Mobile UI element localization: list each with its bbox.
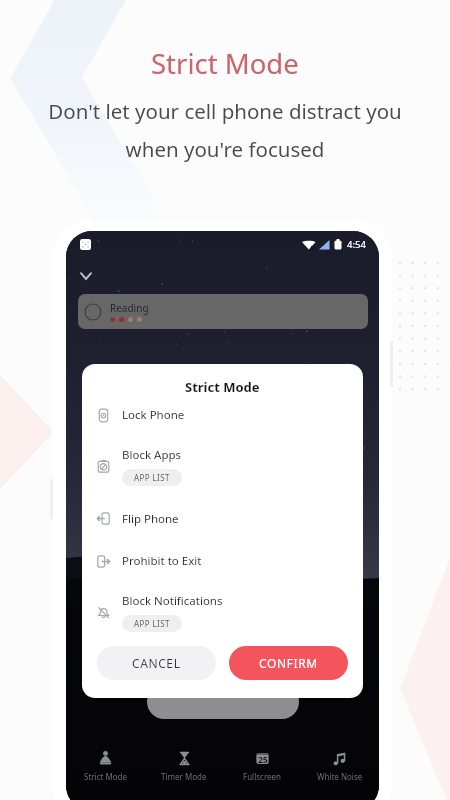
staticText: Strict Mode <box>151 45 299 82</box>
button[interactable]: White Noise <box>301 747 379 799</box>
button[interactable]: Collapse <box>79 271 93 281</box>
staticText: Block Notifications <box>122 593 223 609</box>
button[interactable]: Flip Phone <box>82 497 363 540</box>
button[interactable]: CONFIRM <box>229 646 348 680</box>
staticText: White Noise <box>317 771 363 782</box>
staticText: Strict Mode <box>185 378 260 395</box>
staticText: Block Apps <box>122 447 182 463</box>
button[interactable]: APP LIST <box>122 469 182 486</box>
staticText: Don't let your cell phone distract you w… <box>48 97 402 163</box>
staticText: Lock Phone <box>122 407 185 423</box>
staticText: Fullscreen <box>243 771 282 782</box>
button[interactable]: Strict Mode <box>66 747 145 799</box>
button[interactable]: APP LIST <box>122 615 182 632</box>
button[interactable]: Timer Mode <box>145 747 223 799</box>
staticText: APP LIST <box>134 618 170 629</box>
button[interactable]: Reading <box>78 294 368 329</box>
staticText: 4:54 <box>347 238 366 251</box>
button[interactable]: Prohibit to Exit <box>82 540 363 582</box>
staticText: Flip Phone <box>122 511 179 527</box>
staticText: Strict Mode <box>84 771 127 782</box>
staticText: Reading <box>110 301 149 315</box>
staticText: Timer Mode <box>161 771 207 782</box>
staticText: CANCEL <box>132 655 181 671</box>
button[interactable]: CANCEL <box>97 646 216 680</box>
button[interactable]: Lock Phone <box>82 395 363 435</box>
button[interactable]: Block Apps <box>82 435 363 497</box>
button[interactable]: Block Notifications <box>82 582 363 643</box>
button[interactable]: 25 <box>223 747 301 799</box>
button[interactable] <box>147 685 299 719</box>
staticText: CONFIRM <box>259 655 318 671</box>
staticText: Prohibit to Exit <box>122 553 202 569</box>
staticText: APP LIST <box>134 472 170 483</box>
staticText: 25 <box>258 754 268 766</box>
